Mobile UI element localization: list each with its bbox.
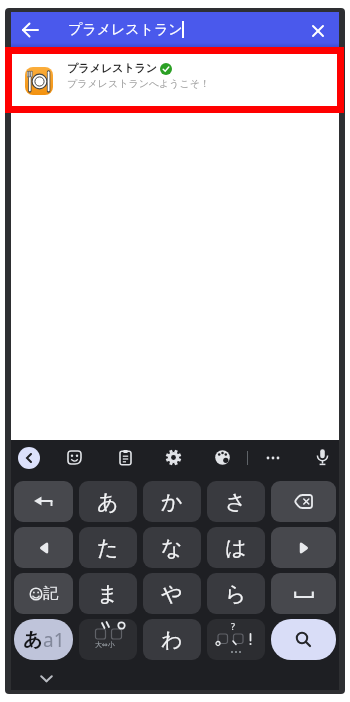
staticText: 記	[43, 584, 58, 603]
button[interactable]: は	[207, 527, 265, 568]
staticText: や	[161, 581, 183, 607]
staticText: は	[225, 535, 247, 561]
button[interactable]: や	[143, 573, 201, 614]
staticText: プラメレストラン	[68, 21, 183, 39]
button[interactable]: あ	[14, 619, 73, 660]
button[interactable]: わ	[143, 619, 201, 660]
staticText: た	[97, 535, 119, 561]
staticText: ら	[225, 581, 247, 607]
button[interactable]: た	[79, 527, 137, 568]
staticText: さ	[225, 489, 247, 515]
button[interactable]	[66, 449, 83, 466]
button[interactable]	[265, 450, 281, 466]
staticText: ま	[97, 581, 119, 607]
button[interactable]	[18, 447, 40, 469]
button[interactable]: あ	[79, 481, 137, 522]
button[interactable]	[271, 619, 336, 660]
button[interactable]	[271, 527, 336, 568]
button[interactable]	[308, 21, 328, 41]
button[interactable]: か	[143, 481, 201, 522]
button[interactable]: な	[143, 527, 201, 568]
staticText: な	[161, 535, 183, 561]
staticText: a1	[43, 627, 65, 653]
button[interactable]	[314, 448, 331, 467]
button[interactable]: さ	[207, 481, 265, 522]
staticText: か	[161, 489, 183, 515]
button[interactable]	[271, 481, 336, 522]
staticText: わ	[161, 627, 183, 653]
button[interactable]	[271, 573, 336, 614]
button[interactable]: 記	[14, 573, 73, 614]
button[interactable]	[14, 527, 73, 568]
staticText: ?	[231, 620, 235, 632]
button[interactable]	[117, 449, 134, 466]
button[interactable]: プラメレストラン	[11, 47, 339, 106]
button[interactable]: ら	[207, 573, 265, 614]
button[interactable]	[214, 449, 231, 466]
button[interactable]	[20, 19, 42, 41]
button[interactable]	[165, 449, 182, 466]
button[interactable]: ?	[207, 619, 265, 660]
staticText: あ	[97, 489, 119, 515]
staticText: あ	[23, 628, 43, 652]
staticText: プラメレストラン	[67, 61, 158, 75]
button[interactable]: 大⇔小	[79, 619, 137, 660]
staticText: 大⇔小	[95, 640, 115, 649]
staticText: プラメレストランへようこそ！	[67, 77, 211, 90]
button[interactable]	[14, 481, 73, 522]
button[interactable]: ま	[79, 573, 137, 614]
